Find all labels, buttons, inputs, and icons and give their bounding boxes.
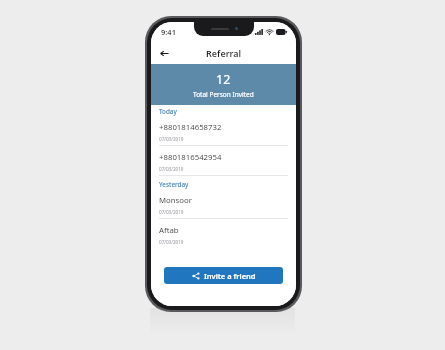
staticText: 12 <box>216 71 231 88</box>
staticText: 07/03/2019 <box>159 209 184 215</box>
staticText: 07/03/2019 <box>159 166 184 172</box>
staticText: Invite a friend <box>204 271 256 281</box>
staticText: 07/03/2019 <box>159 239 184 245</box>
staticText: Aftab <box>159 225 179 236</box>
staticText: 9:41 <box>161 27 176 37</box>
staticText: +8801816542954 <box>159 152 222 163</box>
staticText: Yesterday <box>159 180 189 189</box>
staticText: Monsoor <box>159 195 192 206</box>
button[interactable]: Monsoor <box>151 191 296 221</box>
button[interactable]: Invite a friend <box>164 267 283 284</box>
staticText: Total Person Invited <box>193 90 254 99</box>
button[interactable]: +8801816542954 <box>151 148 296 178</box>
staticText: +8801814658732 <box>159 122 222 133</box>
button[interactable]: Aftab <box>151 221 296 250</box>
staticText: Referral <box>206 47 242 59</box>
button[interactable]: +8801814658732 <box>151 118 296 148</box>
button[interactable]: Back <box>155 44 173 62</box>
staticText: 07/03/2019 <box>159 136 184 142</box>
staticText: Today <box>159 107 177 116</box>
